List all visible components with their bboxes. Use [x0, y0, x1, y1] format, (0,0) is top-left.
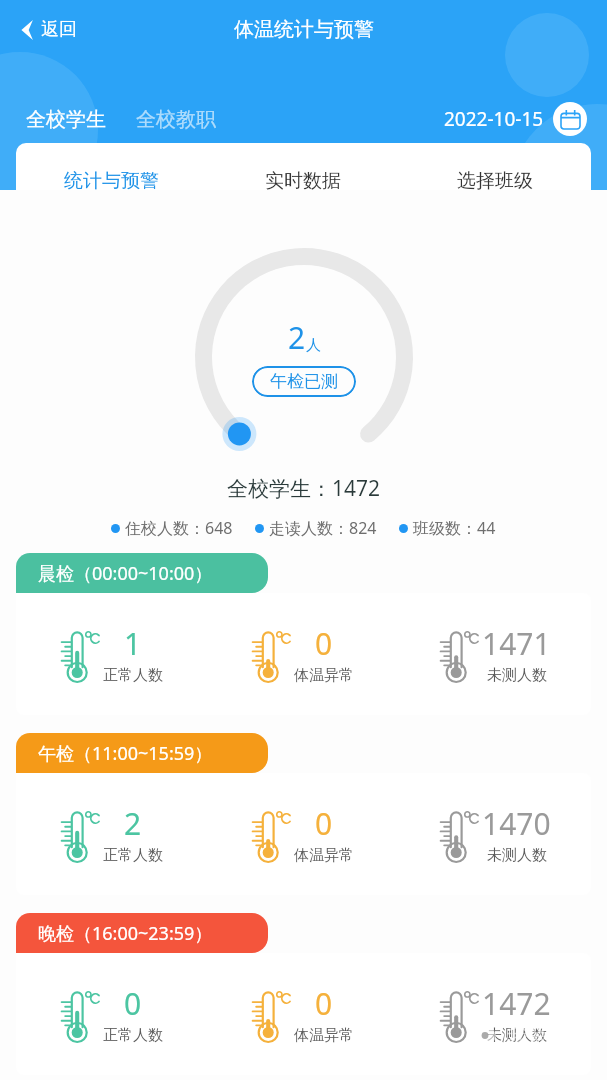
staticText: 正常人数: [103, 1026, 163, 1045]
button[interactable]: 晚检（16:00~23:59）: [16, 913, 268, 953]
staticText: 1471: [482, 623, 551, 664]
staticText: 体温异常: [294, 846, 354, 865]
staticText: 住校人数：648: [125, 517, 233, 539]
button[interactable]: Back: [14, 14, 83, 45]
button[interactable]: 1: [16, 593, 207, 715]
staticText: 全校学生：1472: [0, 474, 607, 503]
staticText: 0: [315, 803, 333, 844]
staticText: 1: [124, 623, 142, 664]
button[interactable]: 午检（11:00~15:59）: [16, 733, 268, 773]
button[interactable]: 晨检（00:00~10:00）: [16, 553, 268, 593]
button[interactable]: 午检已测: [252, 366, 356, 397]
button[interactable]: 0: [16, 953, 207, 1075]
staticText: 体温统计与预警: [234, 17, 374, 42]
staticText: 未测人数: [487, 666, 547, 685]
button[interactable]: 实时数据: [207, 143, 399, 190]
staticText: 1470: [482, 803, 551, 844]
staticText: 体温异常: [294, 1026, 354, 1045]
staticText: 2022-10-15: [444, 106, 544, 132]
staticText: 统计与预警: [64, 169, 159, 190]
staticText: 未测人数: [487, 1026, 547, 1045]
button[interactable]: 0: [207, 953, 399, 1075]
staticText: 0: [315, 983, 333, 1024]
staticText: 选择班级: [457, 169, 533, 190]
staticText: 晨检（00:00~10:00）: [38, 561, 213, 586]
staticText: 午检已测: [270, 371, 338, 392]
button[interactable]: 0: [207, 773, 399, 895]
staticText: 走读人数：824: [269, 517, 377, 539]
staticText: 1472: [482, 983, 551, 1024]
button[interactable]: 1471: [399, 593, 591, 715]
staticText: 返回: [41, 18, 77, 41]
button[interactable]: 选择班级: [399, 143, 591, 190]
other: Pick date: [553, 102, 587, 136]
staticText: 实时数据: [265, 169, 341, 190]
button[interactable]: 1470: [399, 773, 591, 895]
button[interactable]: 2022-10-15: [442, 100, 589, 138]
staticText: 2: [124, 803, 142, 844]
button[interactable]: 全校教职: [134, 105, 218, 134]
staticText: 体温异常: [294, 666, 354, 685]
button[interactable]: 0: [207, 593, 399, 715]
staticText: 班级数：44: [413, 517, 496, 539]
staticText: 我爱安卓: [507, 1024, 591, 1050]
staticText: 人: [306, 336, 321, 355]
other: Back: [20, 20, 34, 40]
button[interactable]: 2: [16, 773, 207, 895]
staticText: 未测人数: [487, 846, 547, 865]
staticText: 0: [315, 623, 333, 664]
staticText: 午检（11:00~15:59）: [38, 741, 213, 766]
staticText: 2: [288, 317, 306, 358]
staticText: 正常人数: [103, 846, 163, 865]
staticText: 正常人数: [103, 666, 163, 685]
button[interactable]: 全校学生: [24, 105, 108, 134]
staticText: 晚检（16:00~23:59）: [38, 921, 213, 946]
button[interactable]: 统计与预警: [16, 143, 207, 190]
staticText: 0: [124, 983, 142, 1024]
button[interactable]: 1472: [399, 953, 591, 1075]
